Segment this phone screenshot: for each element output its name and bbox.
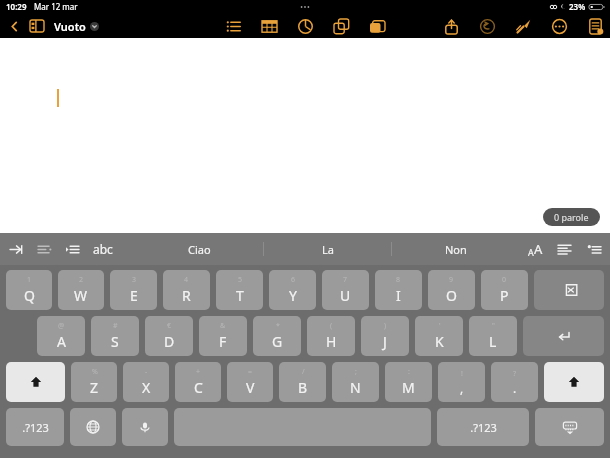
- button[interactable]: Non: [392, 233, 519, 265]
- button[interactable]: List style: [585, 240, 603, 258]
- staticText: 0: [502, 275, 507, 285]
- staticText: @: [58, 321, 65, 331]
- button[interactable]: !: [438, 362, 485, 402]
- staticText: E: [130, 286, 138, 305]
- staticText: A: [534, 240, 543, 258]
- button[interactable]: La: [264, 233, 391, 265]
- button[interactable]: Undo: [476, 15, 498, 37]
- button[interactable]: %: [71, 362, 117, 402]
- staticText: K: [435, 332, 444, 351]
- button[interactable]: Insert shape: [330, 15, 352, 37]
- staticText: 3: [132, 275, 137, 285]
- button[interactable]: :: [385, 362, 432, 402]
- button[interactable]: 3: [110, 270, 157, 310]
- button[interactable]: Sidebar: [26, 15, 48, 37]
- staticText: W: [74, 286, 88, 305]
- button[interactable]: ": [469, 316, 517, 356]
- button[interactable]: &: [199, 316, 247, 356]
- button[interactable]: Change keyboard: [70, 408, 116, 446]
- staticText: 4: [184, 275, 189, 285]
- button[interactable]: +: [175, 362, 221, 402]
- staticText: 1: [27, 275, 32, 285]
- button[interactable]: 6: [269, 270, 316, 310]
- button[interactable]: abc: [91, 241, 115, 257]
- staticText: ): [384, 321, 387, 331]
- button[interactable]: Insert list: [222, 15, 244, 37]
- staticText: €: [167, 321, 172, 331]
- button[interactable]: €: [145, 316, 193, 356]
- staticText: -: [145, 367, 148, 377]
- button[interactable]: Shift: [6, 362, 65, 402]
- staticText: T: [236, 286, 244, 305]
- button[interactable]: Share: [440, 15, 462, 37]
- staticText: 5: [238, 275, 243, 285]
- button[interactable]: 1: [6, 270, 52, 310]
- staticText: ;: [355, 367, 357, 377]
- button[interactable]: 8: [375, 270, 422, 310]
- staticText: Vuoto: [54, 19, 86, 34]
- button[interactable]: #: [91, 316, 139, 356]
- button[interactable]: @: [37, 316, 85, 356]
- button[interactable]: *: [253, 316, 301, 356]
- button[interactable]: Dictation: [122, 408, 168, 446]
- staticText: (: [330, 321, 333, 331]
- staticText: H: [326, 332, 337, 351]
- button[interactable]: Insert media: [366, 15, 388, 37]
- button[interactable]: Insert chart: [294, 15, 316, 37]
- button[interactable]: Return: [523, 316, 604, 356]
- staticText: B: [298, 378, 308, 397]
- staticText: A: [57, 332, 66, 351]
- button[interactable]: Shift: [544, 362, 604, 402]
- button[interactable]: 9: [428, 270, 475, 310]
- button[interactable]: 0: [481, 270, 528, 310]
- button[interactable]: 2: [58, 270, 104, 310]
- button[interactable]: Vuoto: [54, 19, 99, 34]
- button[interactable]: ': [415, 316, 463, 356]
- staticText: V: [246, 378, 255, 397]
- staticText: A: [528, 246, 534, 258]
- button[interactable]: Format brush: [512, 15, 534, 37]
- button[interactable]: More: [548, 15, 570, 37]
- button[interactable]: 5: [216, 270, 263, 310]
- button[interactable]: -: [123, 362, 169, 402]
- staticText: U: [340, 286, 351, 305]
- button[interactable]: =: [227, 362, 273, 402]
- staticText: R: [182, 286, 191, 305]
- staticText: L: [489, 332, 497, 351]
- button[interactable]: Align: [35, 240, 53, 258]
- button[interactable]: .?123: [437, 408, 529, 446]
- button[interactable]: Tab: [7, 240, 25, 258]
- button[interactable]: 4: [163, 270, 210, 310]
- button[interactable]: .?123: [6, 408, 64, 446]
- button[interactable]: Paragraph style: [555, 240, 573, 258]
- staticText: 8: [396, 275, 401, 285]
- button[interactable]: Indent: [63, 240, 81, 258]
- button[interactable]: Text size: [528, 240, 543, 258]
- staticText: 2: [79, 275, 84, 285]
- button[interactable]: ?: [491, 362, 538, 402]
- staticText: ": [492, 321, 495, 331]
- button[interactable]: ;: [332, 362, 379, 402]
- staticText: La: [322, 242, 334, 257]
- button[interactable]: Back: [4, 16, 24, 36]
- button[interactable]: /: [279, 362, 326, 402]
- staticText: M: [402, 378, 415, 397]
- button[interactable]: Ciao: [136, 233, 263, 265]
- button[interactable]: (: [307, 316, 355, 356]
- button[interactable]: 7: [322, 270, 369, 310]
- staticText: X: [142, 378, 151, 397]
- staticText: J: [383, 332, 387, 351]
- staticText: !: [461, 369, 463, 379]
- button[interactable]: 0 parole: [543, 208, 600, 226]
- staticText: =: [248, 367, 253, 377]
- staticText: 10:29: [6, 1, 27, 12]
- button[interactable]: Backspace: [534, 270, 604, 310]
- staticText: C: [194, 378, 203, 397]
- button[interactable]: Hide keyboard: [535, 408, 604, 446]
- button[interactable]: Document options: [584, 15, 606, 37]
- button[interactable]: Insert table: [258, 15, 280, 37]
- button[interactable]: ): [361, 316, 409, 356]
- staticText: O: [446, 286, 457, 305]
- staticText: ,: [460, 380, 464, 396]
